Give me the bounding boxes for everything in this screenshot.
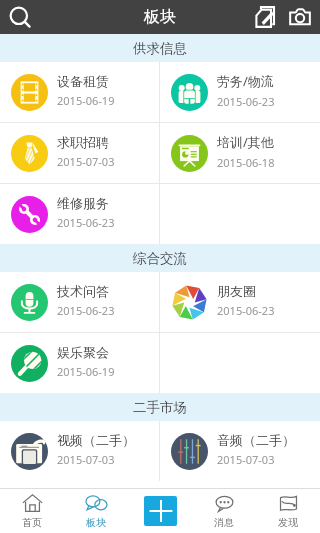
staticText: 2015-07-03 <box>57 452 115 467</box>
button[interactable]: 维修服务 <box>0 184 159 244</box>
button[interactable]: Add <box>144 496 177 526</box>
staticText: 消息 <box>214 516 234 529</box>
staticText: 2015-07-03 <box>217 452 275 467</box>
staticText: 维修服务 <box>57 195 109 211</box>
staticText: 培训/其他 <box>217 133 274 151</box>
staticText: 供求信息 <box>133 40 187 57</box>
button[interactable]: 求职招聘 <box>0 123 159 183</box>
button[interactable]: 板块 <box>64 488 128 533</box>
staticText: 2015-06-23 <box>217 94 275 109</box>
button[interactable]: 首页 <box>0 488 64 533</box>
staticText: 劳务/物流 <box>217 72 274 90</box>
staticText: 2015-06-23 <box>217 303 275 318</box>
button[interactable]: Compose <box>251 3 279 31</box>
staticText: 设备租赁 <box>57 73 109 89</box>
button[interactable]: 娱乐聚会 <box>0 333 159 393</box>
staticText: 2015-06-19 <box>57 93 115 108</box>
staticText: 2015-06-19 <box>57 364 115 379</box>
staticText: 2015-06-23 <box>57 303 115 318</box>
button[interactable]: 音频（二手） <box>160 421 320 481</box>
button[interactable]: 劳务/物流 <box>160 62 320 122</box>
button[interactable]: 设备租赁 <box>0 62 159 122</box>
staticText: 技术问答 <box>57 283 109 299</box>
staticText: 综合交流 <box>133 250 187 267</box>
staticText: 首页 <box>22 516 42 529</box>
button[interactable]: 发现 <box>256 488 320 533</box>
button[interactable]: 视频（二手） <box>0 421 159 481</box>
button[interactable]: 技术问答 <box>0 272 159 332</box>
staticText: 视频（二手） <box>57 432 135 448</box>
staticText: 2015-06-18 <box>217 155 275 170</box>
staticText: 求职招聘 <box>57 134 109 150</box>
staticText: 板块 <box>86 516 106 529</box>
button[interactable]: 朋友圈 <box>160 272 320 332</box>
button[interactable]: Search <box>4 1 36 33</box>
staticText: 音频（二手） <box>217 432 295 448</box>
staticText: 2015-07-03 <box>57 154 115 169</box>
button[interactable]: 消息 <box>192 488 256 533</box>
staticText: 发现 <box>278 516 298 529</box>
button[interactable]: Camera <box>286 3 314 31</box>
staticText: 2015-06-23 <box>57 215 115 230</box>
staticText: 娱乐聚会 <box>57 344 109 360</box>
button[interactable]: 培训/其他 <box>160 123 320 183</box>
staticText: 朋友圈 <box>217 283 256 299</box>
staticText: 板块 <box>144 7 176 27</box>
staticText: 二手市场 <box>133 399 187 416</box>
